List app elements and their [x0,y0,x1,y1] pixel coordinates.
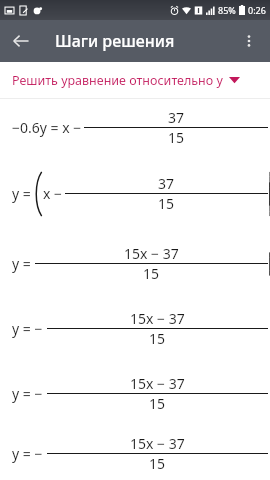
button[interactable]: y = − [0,361,270,426]
button[interactable]: y = − [0,296,270,361]
staticText: 15 [149,394,166,413]
button[interactable]: y = [0,156,270,231]
staticText: 15 [149,454,166,473]
button[interactable]: Меню [232,24,266,58]
staticText: 15x − 37 [130,309,185,328]
staticText: 37 [158,174,175,193]
staticText: 85% [218,4,236,16]
button[interactable]: y = [0,231,270,296]
button[interactable]: Решить уравнение относительно y [0,62,270,98]
staticText: Решить уравнение относительно y [12,72,223,89]
button[interactable]: −0.6y = x − [0,99,270,156]
staticText: 15 [149,329,166,348]
staticText: x − [43,184,63,203]
staticText: y = − [12,444,43,463]
staticText: y = − [12,384,43,403]
staticText: 0:26 [248,4,266,16]
staticText: y = [12,184,31,203]
staticText: 15x − 37 [130,434,185,453]
staticText: y = [12,254,31,273]
staticText: 15x − 37 [124,244,179,263]
staticText: Шаги решения [55,30,175,52]
staticText: 37 [168,108,185,127]
staticText: −0.6y = x − [12,118,82,137]
staticText: 15 [168,128,185,147]
staticText: 15 [143,264,160,283]
staticText: 15 [158,194,175,213]
button[interactable]: y = − [0,426,270,480]
staticText: y = − [12,319,43,338]
staticText: 15x − 37 [130,374,185,393]
button[interactable]: Назад [4,24,38,58]
